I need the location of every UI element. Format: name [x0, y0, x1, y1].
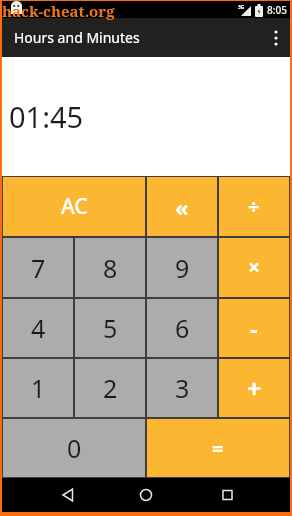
staticText: 0	[67, 431, 82, 465]
staticText: 6	[175, 311, 190, 345]
staticText: 7	[31, 251, 46, 285]
staticText: 01:45	[9, 97, 84, 136]
staticText: «	[175, 192, 189, 222]
staticText: 1	[31, 371, 46, 405]
staticText: Hours and Minutes	[14, 28, 140, 47]
staticText: -	[250, 312, 258, 345]
staticText: 5	[103, 311, 118, 345]
staticText: AC	[61, 192, 88, 221]
staticText: 3G	[238, 4, 245, 11]
staticText: ×	[248, 253, 261, 282]
staticText: =	[212, 435, 224, 462]
staticText: +	[247, 371, 262, 405]
staticText: hack-cheat.org	[2, 1, 115, 21]
staticText: ÷	[248, 193, 260, 220]
staticText: 9	[175, 251, 190, 285]
staticText: 8:05	[267, 3, 287, 17]
staticText: 4	[31, 311, 46, 345]
staticText: 8	[103, 251, 118, 285]
staticText: 2	[103, 371, 118, 405]
staticText: 3	[175, 371, 190, 405]
